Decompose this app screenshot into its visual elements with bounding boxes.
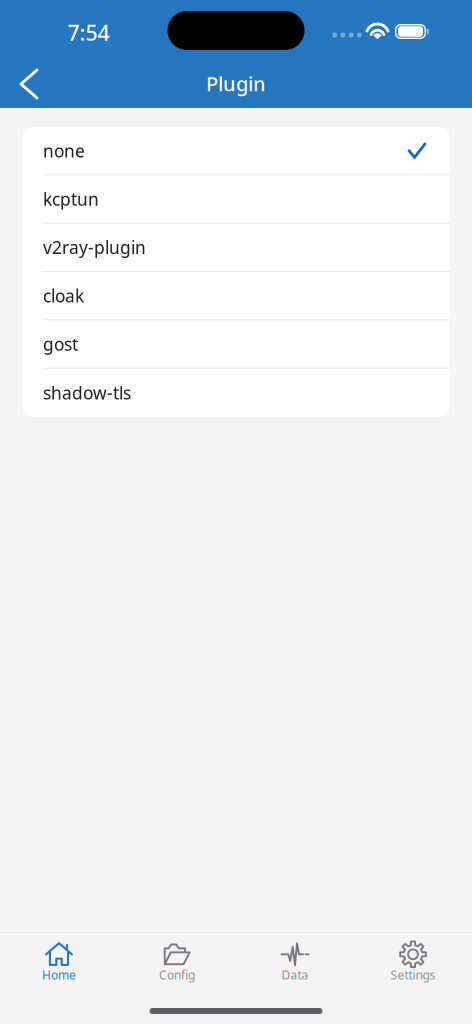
button[interactable]: shadow-tls <box>22 369 450 417</box>
staticText: Settings <box>390 967 435 983</box>
staticText: gost <box>43 332 78 355</box>
button[interactable]: kcptun <box>22 175 450 224</box>
staticText: v2ray-plugin <box>43 236 146 259</box>
staticText: Home <box>42 967 76 983</box>
button[interactable]: Data <box>236 941 354 982</box>
button[interactable]: Config <box>118 941 236 982</box>
staticText: none <box>43 139 85 162</box>
button[interactable]: cloak <box>22 272 450 320</box>
staticText: 7:54 <box>67 18 109 47</box>
staticText: kcptun <box>43 187 99 210</box>
staticText: Data <box>281 967 308 983</box>
button[interactable]: v2ray-plugin <box>22 224 450 272</box>
staticText: cloak <box>43 284 84 307</box>
button[interactable]: gost <box>22 320 450 369</box>
staticText: Config <box>159 967 195 983</box>
staticText: Plugin <box>206 70 266 97</box>
button[interactable]: Settings <box>354 941 472 982</box>
button[interactable]: Home <box>0 941 118 982</box>
staticText: shadow-tls <box>43 381 131 404</box>
button[interactable]: none <box>22 127 450 175</box>
button[interactable]: Back <box>0 57 56 107</box>
